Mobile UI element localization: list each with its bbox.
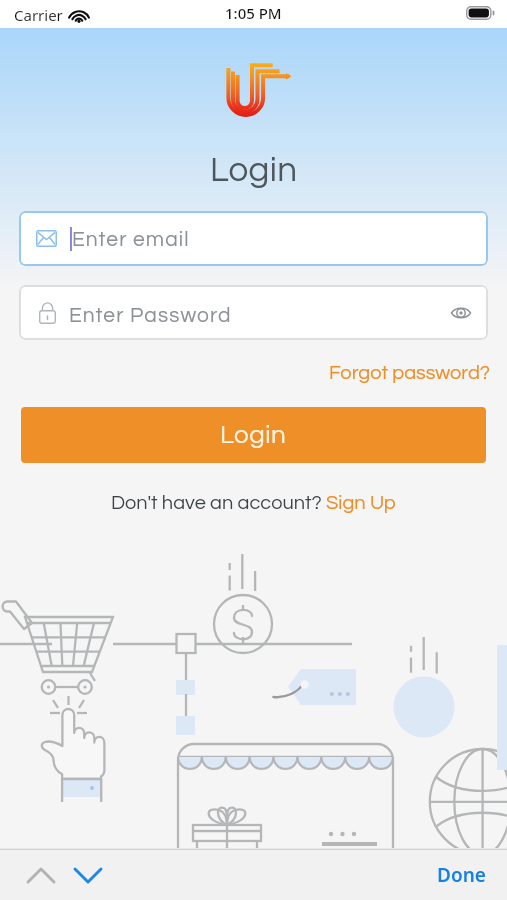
staticText: Enter Password: [69, 305, 232, 327]
staticText: Login: [210, 152, 298, 188]
button[interactable]: Enter email: [19, 211, 488, 266]
staticText: Enter email: [72, 229, 190, 251]
button[interactable]: Done: [437, 862, 486, 888]
staticText: Login: [220, 422, 287, 449]
button[interactable]: Forgot password?: [329, 363, 491, 384]
staticText: Done: [437, 862, 486, 888]
button[interactable]: Next field: [69, 856, 107, 894]
button[interactable]: Sign Up: [326, 493, 396, 514]
button[interactable]: Login: [21, 407, 486, 463]
staticText: Carrier: [14, 5, 63, 25]
staticText: Sign Up: [326, 493, 396, 514]
button[interactable]: Show password: [444, 296, 478, 330]
staticText: Don't have an account?: [111, 493, 326, 514]
button[interactable]: Enter Password: [19, 285, 488, 340]
staticText: Forgot password?: [329, 363, 491, 384]
staticText: 1:05 PM: [225, 3, 282, 23]
button[interactable]: Previous field: [22, 856, 60, 894]
